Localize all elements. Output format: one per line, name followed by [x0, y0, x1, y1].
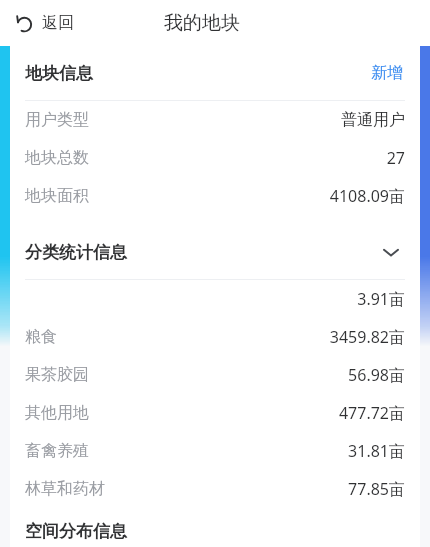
- staticText: 27: [386, 147, 405, 169]
- staticText: 地块面积: [25, 186, 89, 206]
- button[interactable]: 地块信息: [10, 46, 420, 100]
- staticText: 3459.82亩: [329, 326, 405, 348]
- staticText: 我的地块: [164, 11, 240, 35]
- button[interactable]: 地块面积: [10, 177, 420, 215]
- staticText: 31.81亩: [348, 440, 405, 462]
- staticText: 4108.09亩: [329, 185, 405, 207]
- button[interactable]: 林草和药材: [10, 470, 420, 508]
- staticText: 果茶胶园: [25, 365, 89, 385]
- button[interactable]: 空间分布信息: [10, 516, 420, 547]
- other: Back: [14, 13, 34, 33]
- staticText: 粮食: [25, 327, 57, 347]
- staticText: 畜禽养殖: [25, 441, 89, 461]
- button[interactable]: Collapse section: [377, 238, 405, 266]
- staticText: 地块总数: [25, 148, 89, 168]
- button[interactable]: 果茶胶园: [10, 356, 420, 394]
- staticText: 地块信息: [25, 63, 93, 84]
- button[interactable]: 畜禽养殖: [10, 432, 420, 470]
- staticText: 77.85亩: [348, 478, 405, 500]
- staticText: 56.98亩: [348, 364, 405, 386]
- button[interactable]: Back: [8, 7, 80, 39]
- staticText: 返回: [42, 13, 74, 33]
- button[interactable]: 粮食: [10, 318, 420, 356]
- button[interactable]: 分类统计信息: [10, 225, 420, 279]
- staticText: 3.91亩: [357, 288, 405, 310]
- staticText: 空间分布信息: [25, 521, 127, 542]
- staticText: 林草和药材: [25, 479, 105, 499]
- staticText: 新增: [371, 63, 403, 83]
- button[interactable]: 3.91亩: [10, 280, 420, 318]
- button[interactable]: 新增: [369, 59, 405, 87]
- button[interactable]: 用户类型: [10, 101, 420, 139]
- staticText: 用户类型: [25, 110, 89, 130]
- staticText: 其他用地: [25, 403, 89, 423]
- button[interactable]: 其他用地: [10, 394, 420, 432]
- staticText: 普通用户: [341, 110, 405, 130]
- button[interactable]: 地块总数: [10, 139, 420, 177]
- staticText: 477.72亩: [338, 402, 405, 424]
- staticText: 分类统计信息: [25, 242, 127, 263]
